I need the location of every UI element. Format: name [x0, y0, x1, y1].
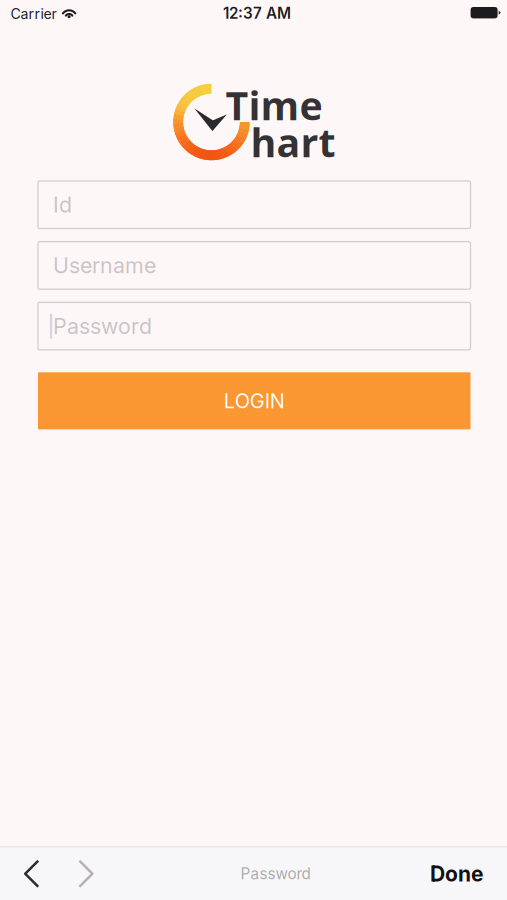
button[interactable]: Previous field: [0, 847, 59, 900]
button[interactable]: LOGIN: [38, 372, 470, 429]
button[interactable]: Username: [38, 242, 470, 289]
staticText: Carrier: [10, 5, 56, 22]
staticText: LOGIN: [224, 389, 285, 413]
staticText: Password: [53, 313, 152, 339]
button[interactable]: Done: [418, 847, 495, 900]
staticText: Password: [240, 864, 310, 883]
staticText: Done: [430, 861, 483, 886]
button[interactable]: Id: [38, 181, 470, 228]
button[interactable]: Password: [38, 302, 470, 350]
button[interactable]: Next field: [59, 847, 112, 900]
staticText: Id: [53, 192, 72, 218]
staticText: hart: [250, 115, 335, 169]
staticText: 12:37 AM: [223, 4, 291, 22]
staticText: Username: [53, 252, 156, 278]
staticText: Time: [225, 78, 322, 132]
